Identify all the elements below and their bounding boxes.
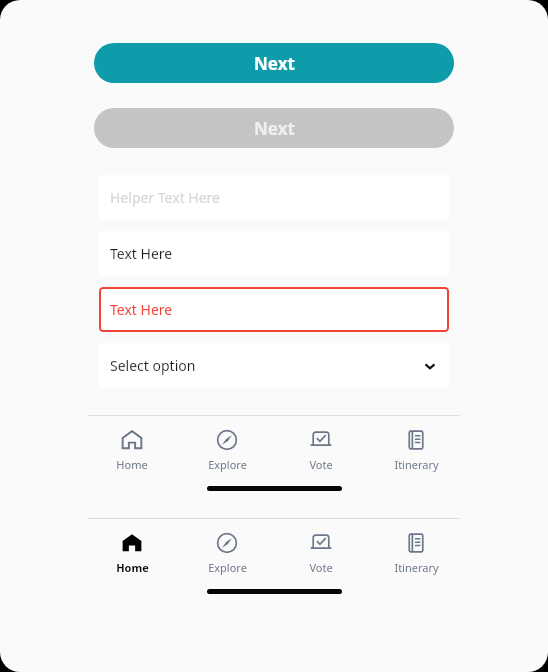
button[interactable]: Next [94, 43, 454, 83]
staticText: Helper Text Here [110, 188, 220, 207]
button[interactable]: Home [100, 427, 164, 472]
staticText: Vote [309, 457, 333, 472]
button[interactable]: Home [100, 530, 164, 575]
staticText: Explore [208, 457, 247, 472]
other: Open dropdown [422, 358, 438, 374]
button[interactable]: Explore [195, 530, 259, 575]
staticText: Home [116, 560, 149, 575]
button[interactable]: Text Here [99, 231, 449, 276]
button[interactable]: Vote [289, 427, 353, 472]
staticText: Text Here [110, 300, 173, 319]
button[interactable]: Text Here [99, 287, 449, 332]
staticText: Vote [309, 560, 333, 575]
button[interactable]: Helper Text Here [99, 175, 449, 220]
staticText: Home [116, 457, 148, 472]
button[interactable]: Explore [195, 427, 259, 472]
staticText: Itinerary [394, 457, 439, 472]
button[interactable]: Select option [99, 343, 449, 388]
button[interactable]: Itinerary [384, 427, 448, 472]
staticText: Explore [208, 560, 247, 575]
staticText: Next [254, 52, 295, 75]
button[interactable]: Next [94, 108, 454, 148]
staticText: Itinerary [394, 560, 439, 575]
button[interactable]: Vote [289, 530, 353, 575]
staticText: Next [254, 117, 295, 140]
button[interactable]: Itinerary [384, 530, 448, 575]
staticText: Text Here [110, 244, 173, 263]
staticText: Select option [110, 356, 196, 375]
